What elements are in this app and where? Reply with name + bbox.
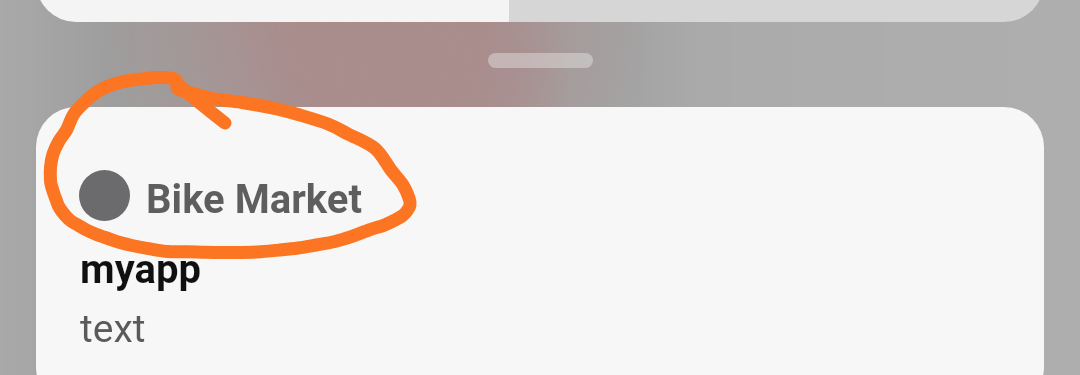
button[interactable]: Previous notification [36, 0, 1044, 22]
other: Annotation [0, 0, 1080, 375]
staticText: Bike Market [146, 176, 362, 223]
button[interactable]: Bike Market [36, 107, 1044, 375]
staticText: myapp [80, 246, 201, 293]
button[interactable]: Expand notification shade [488, 53, 593, 68]
staticText: text [80, 306, 146, 352]
